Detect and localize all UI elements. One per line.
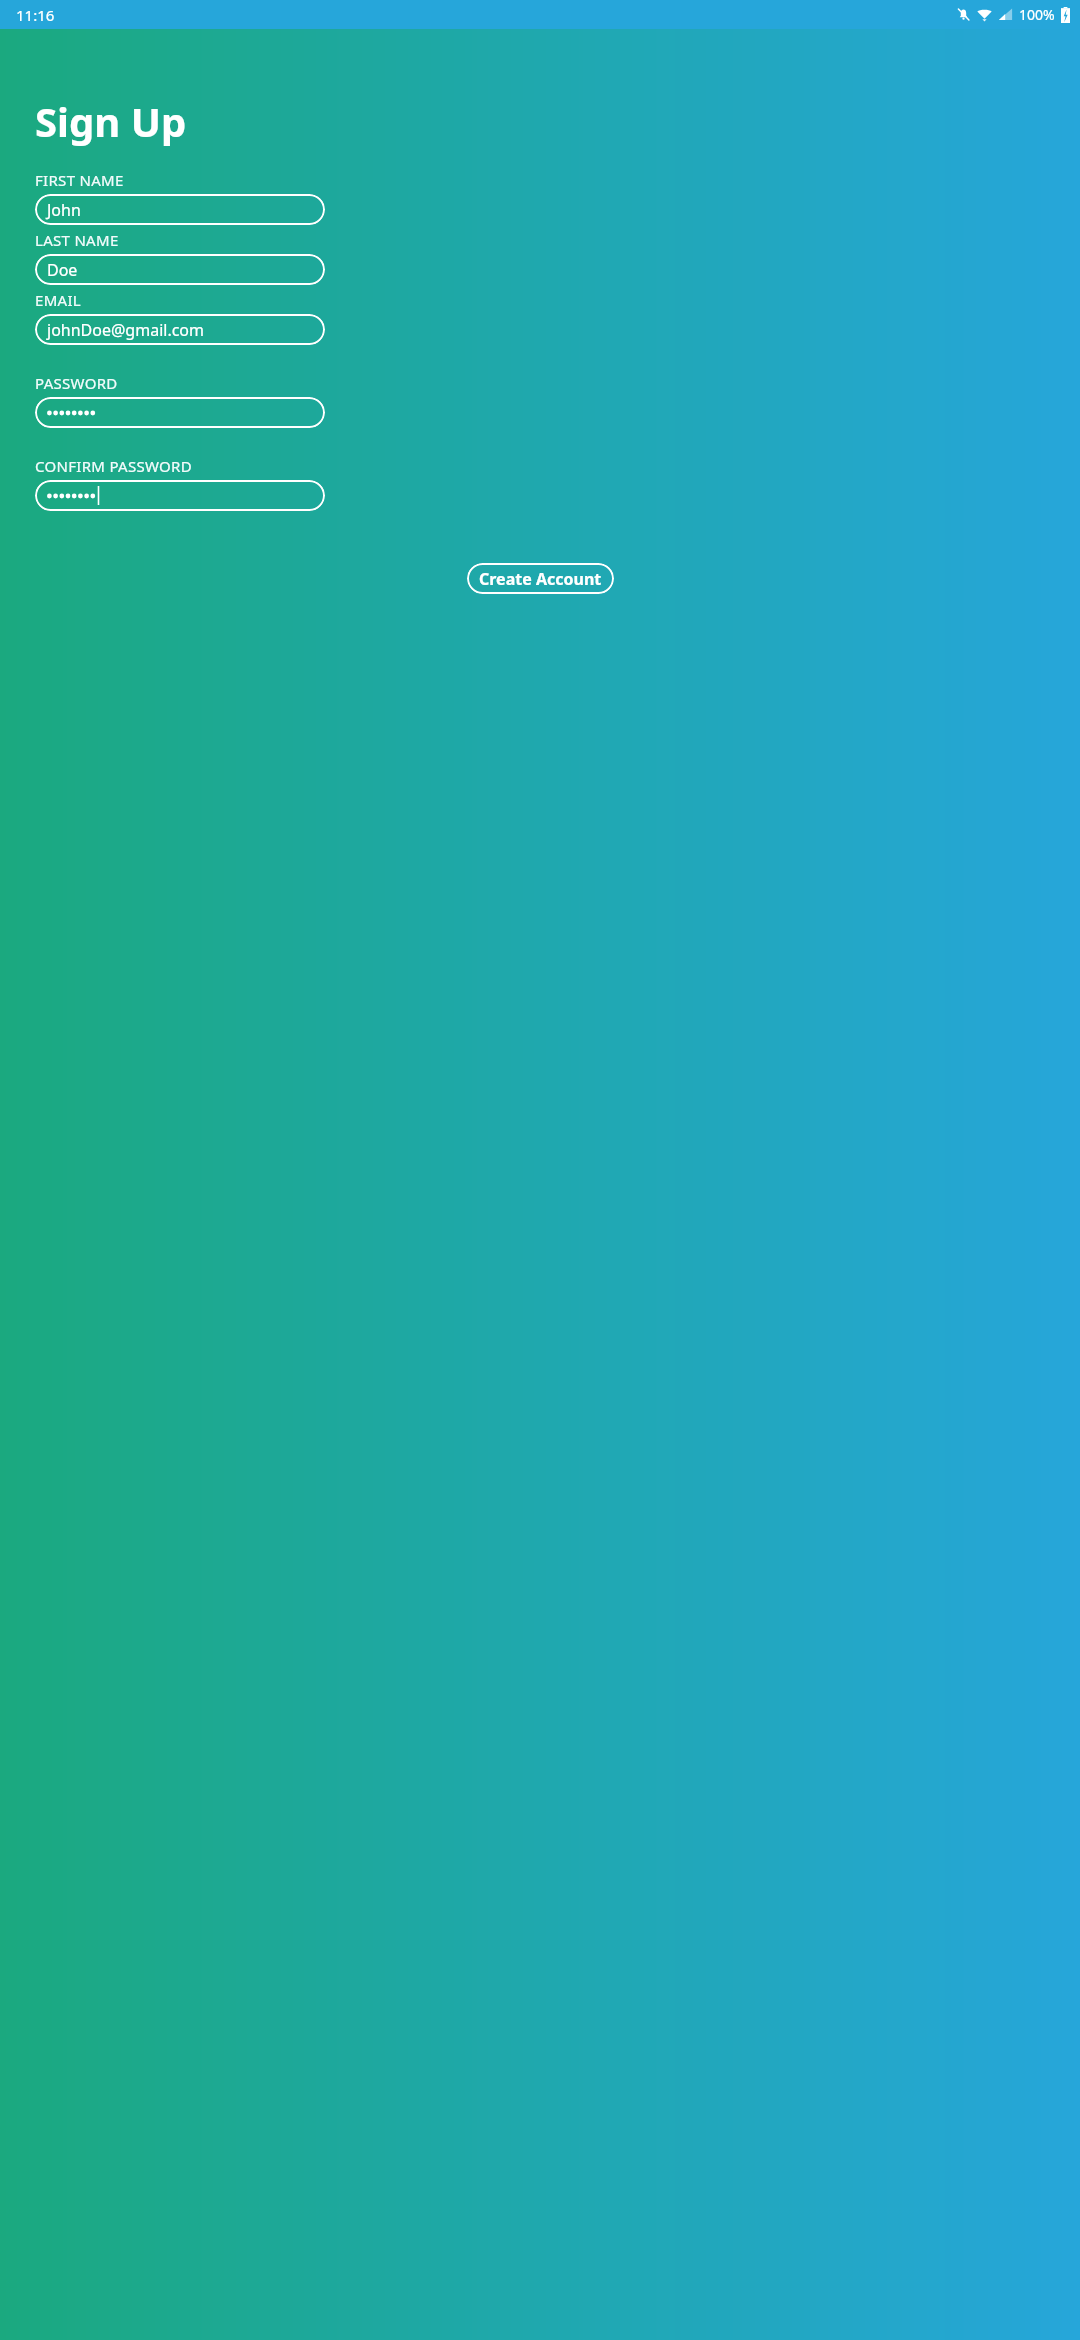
button[interactable]: [35, 480, 325, 511]
button[interactable]: [35, 397, 325, 428]
staticText: PASSWORD: [35, 373, 118, 393]
staticText: 11:16: [16, 5, 55, 25]
staticText: John: [47, 199, 81, 221]
button[interactable]: John: [35, 194, 325, 225]
staticText: Doe: [47, 259, 78, 281]
staticText: CONFIRM PASSWORD: [35, 456, 192, 476]
staticText: johnDoe@gmail.com: [47, 319, 204, 341]
staticText: FIRST NAME: [35, 170, 124, 190]
staticText: Create Account: [479, 568, 602, 590]
staticText: LAST NAME: [35, 230, 119, 250]
staticText: 100%: [1019, 5, 1055, 24]
button[interactable]: johnDoe@gmail.com: [35, 314, 325, 345]
button[interactable]: Doe: [35, 254, 325, 285]
staticText: EMAIL: [35, 290, 81, 310]
button[interactable]: Create Account: [467, 563, 614, 594]
staticText: Sign Up: [35, 94, 187, 148]
